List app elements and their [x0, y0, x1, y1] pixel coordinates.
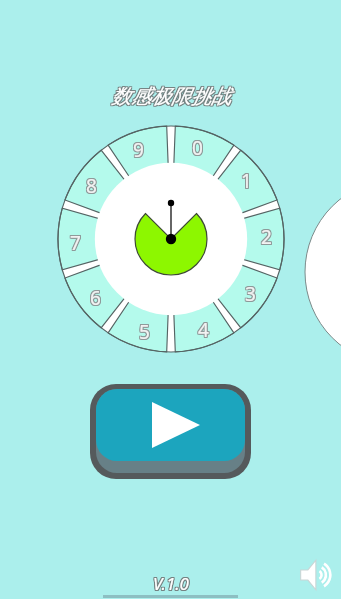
staticText: 数感极限挑战 [112, 84, 232, 109]
staticText: 8 [86, 172, 97, 198]
staticText: 0 [191, 135, 202, 161]
staticText: 6 [89, 285, 100, 311]
staticText: 8 [85, 172, 96, 198]
staticText: 4 [199, 318, 210, 344]
staticText: 2 [262, 225, 273, 251]
staticText: 5 [139, 319, 150, 345]
staticText: 6 [89, 284, 100, 310]
staticText: V.1.0 [152, 571, 188, 594]
staticText: 9 [134, 138, 145, 164]
staticText: 数感极限挑战 [111, 85, 231, 110]
staticText: 6 [91, 285, 102, 311]
staticText: 7 [69, 231, 80, 257]
staticText: 8 [87, 174, 98, 200]
staticText: 4 [198, 318, 209, 344]
button[interactable]: Sound [298, 557, 336, 593]
staticText: 3 [246, 281, 257, 307]
staticText: 2 [261, 225, 272, 251]
staticText: 4 [198, 316, 209, 342]
staticText: 9 [133, 137, 144, 163]
staticText: 7 [69, 229, 80, 255]
staticText: 0 [193, 135, 204, 161]
staticText: 1 [241, 167, 252, 193]
staticText: 7 [71, 229, 82, 255]
staticText: 数感极限挑战 [112, 83, 232, 108]
staticText: 6 [91, 286, 102, 312]
staticText: 9 [132, 137, 143, 163]
staticText: 9 [133, 136, 144, 162]
staticText: 3 [244, 281, 255, 307]
staticText: 1 [241, 168, 252, 194]
staticText: 4 [199, 316, 210, 342]
staticText: 3 [244, 280, 255, 306]
staticText: 1 [241, 169, 252, 195]
staticText: 4 [198, 317, 209, 343]
staticText: 5 [140, 319, 151, 345]
staticText: 数感极限挑战 [111, 83, 231, 108]
staticText: 9 [134, 137, 145, 163]
staticText: 5 [138, 320, 149, 346]
staticText: 数感极限挑战 [110, 85, 230, 110]
staticText: 4 [199, 317, 210, 343]
staticText: 9 [132, 138, 143, 164]
staticText: 9 [133, 138, 144, 164]
staticText: 0 [192, 136, 203, 162]
staticText: 5 [140, 318, 151, 344]
staticText: V.1.0 [154, 571, 190, 594]
staticText: 7 [69, 230, 80, 256]
staticText: V.1.0 [153, 571, 189, 594]
staticText: 8 [86, 173, 97, 199]
staticText: V.1.0 [154, 572, 190, 595]
staticText: 4 [197, 318, 208, 344]
staticText: 9 [134, 136, 145, 162]
staticText: 8 [87, 173, 98, 199]
staticText: 5 [138, 318, 149, 344]
staticText: 3 [245, 282, 256, 308]
staticText: 1 [240, 168, 251, 194]
staticText: 1 [240, 169, 251, 195]
staticText: 7 [71, 231, 82, 257]
staticText: 9 [132, 136, 143, 162]
staticText: 3 [244, 282, 255, 308]
staticText: 2 [262, 223, 273, 249]
staticText: 1 [242, 169, 253, 195]
staticText: 3 [245, 281, 256, 307]
staticText: 0 [191, 134, 202, 160]
staticText: V.1.0 [154, 573, 190, 596]
staticText: 2 [261, 223, 272, 249]
staticText: 0 [193, 134, 204, 160]
staticText: 0 [191, 136, 202, 162]
staticText: 8 [86, 174, 97, 200]
staticText: 1 [242, 168, 253, 194]
staticText: 1 [242, 167, 253, 193]
staticText: V.1.0 [152, 573, 188, 596]
staticText: 0 [192, 135, 203, 161]
staticText: 数感极限挑战 [112, 85, 232, 110]
staticText: 数感极限挑战 [110, 83, 230, 108]
staticText: V.1.0 [152, 572, 188, 595]
staticText: 8 [87, 172, 98, 198]
staticText: 8 [85, 174, 96, 200]
staticText: 2 [260, 223, 271, 249]
staticText: 6 [91, 284, 102, 310]
staticText: 数感极限挑战 [111, 84, 231, 109]
staticText: 2 [261, 224, 272, 250]
staticText: V.1.0 [153, 573, 189, 596]
staticText: 2 [260, 224, 271, 250]
staticText: 6 [89, 286, 100, 312]
staticText: 3 [245, 280, 256, 306]
staticText: 8 [85, 173, 96, 199]
staticText: 5 [139, 320, 150, 346]
staticText: 7 [70, 229, 81, 255]
staticText: 6 [90, 284, 101, 310]
button[interactable]: Play [90, 384, 251, 479]
staticText: 数感极限挑战 [110, 84, 230, 109]
staticText: 4 [197, 317, 208, 343]
staticText: 0 [192, 134, 203, 160]
staticText: 2 [260, 225, 271, 251]
staticText: V.1.0 [153, 572, 189, 595]
staticText: 6 [90, 285, 101, 311]
staticText: 0 [193, 136, 204, 162]
staticText: 2 [262, 224, 273, 250]
staticText: 4 [197, 316, 208, 342]
